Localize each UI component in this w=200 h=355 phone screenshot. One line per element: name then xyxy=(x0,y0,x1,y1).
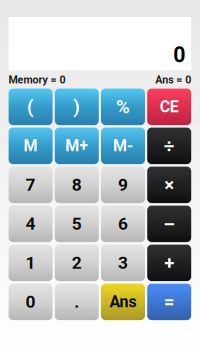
staticText: × xyxy=(164,174,174,196)
staticText: = xyxy=(164,291,175,313)
button[interactable]: + xyxy=(147,245,191,281)
button[interactable]: M+ xyxy=(55,128,99,164)
button[interactable]: 1 xyxy=(9,245,53,281)
button[interactable]: 3 xyxy=(101,245,145,281)
button[interactable]: M xyxy=(9,128,53,164)
staticText: % xyxy=(116,96,130,118)
button[interactable]: M- xyxy=(101,128,145,164)
button[interactable]: ) xyxy=(55,89,99,125)
button[interactable]: × xyxy=(147,167,191,203)
staticText: 3 xyxy=(118,253,128,273)
staticText: Ans = 0 xyxy=(155,74,191,86)
button[interactable]: CE xyxy=(147,89,191,125)
button[interactable]: ÷ xyxy=(147,128,191,164)
staticText: – xyxy=(163,213,175,235)
staticText: M xyxy=(24,136,38,155)
staticText: 6 xyxy=(118,214,128,234)
button[interactable]: – xyxy=(147,206,191,242)
button[interactable]: . xyxy=(55,284,99,320)
staticText: Memory = 0 xyxy=(9,74,66,86)
staticText: + xyxy=(164,252,174,274)
button[interactable]: 5 xyxy=(55,206,99,242)
button[interactable]: 8 xyxy=(55,167,99,203)
staticText: M+ xyxy=(65,136,88,155)
button[interactable]: 4 xyxy=(9,206,53,242)
button[interactable]: Ans xyxy=(101,284,145,320)
button[interactable]: = xyxy=(147,284,191,320)
staticText: 0 xyxy=(173,42,185,67)
button[interactable]: 9 xyxy=(101,167,145,203)
staticText: M- xyxy=(113,136,133,155)
button[interactable]: 2 xyxy=(55,245,99,281)
staticText: ( xyxy=(27,96,34,118)
staticText: 4 xyxy=(26,214,36,234)
staticText: 5 xyxy=(72,214,82,234)
staticText: . xyxy=(74,292,79,312)
staticText: Ans xyxy=(109,292,136,311)
staticText: ÷ xyxy=(164,135,175,157)
button[interactable]: % xyxy=(101,89,145,125)
button[interactable]: 0 xyxy=(9,284,53,320)
button[interactable]: 6 xyxy=(101,206,145,242)
staticText: 1 xyxy=(26,253,36,273)
staticText: 2 xyxy=(72,253,82,273)
staticText: ) xyxy=(73,96,80,118)
staticText: 0 xyxy=(26,292,36,312)
button[interactable]: 7 xyxy=(9,167,53,203)
staticText: 7 xyxy=(26,175,36,195)
staticText: CE xyxy=(160,97,179,116)
staticText: 9 xyxy=(118,175,128,195)
button[interactable]: ( xyxy=(9,89,53,125)
staticText: 8 xyxy=(72,175,82,195)
